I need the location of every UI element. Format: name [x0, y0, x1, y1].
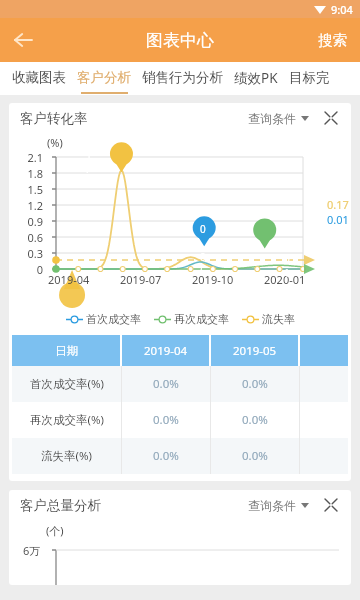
staticText: 0.0% — [242, 412, 268, 428]
staticText: 0 — [9, 262, 43, 277]
staticText: 流失率(%) — [41, 448, 92, 464]
staticText: 2019-07 — [120, 272, 162, 287]
staticText: 查询条件 — [248, 498, 296, 513]
staticText: 0.0% — [242, 376, 268, 392]
staticText: 首次成交率 — [86, 312, 141, 326]
staticText: 0.0% — [242, 448, 268, 464]
staticText: 客户分析 — [77, 69, 131, 86]
staticText: 0.0% — [153, 376, 179, 392]
button[interactable]: 流失率 — [242, 312, 295, 326]
staticText: 再次成交率(%) — [30, 412, 104, 428]
staticText: 9:04 — [331, 2, 353, 17]
staticText: 绩效PK — [234, 69, 278, 87]
button[interactable]: Fullscreen — [320, 494, 342, 516]
button[interactable]: 客户分析 — [77, 62, 131, 95]
staticText: 0.01 — [327, 212, 349, 227]
staticText: 搜索 — [318, 31, 347, 49]
staticText: 1.2 — [9, 198, 43, 213]
button[interactable]: 查询条件 — [246, 493, 311, 518]
staticText: 0.0% — [153, 448, 179, 464]
staticText: 0.9 — [9, 214, 43, 229]
staticText: 2019-04 — [48, 272, 90, 287]
button[interactable]: Back — [0, 18, 46, 62]
staticText: 1.5 — [9, 182, 43, 197]
staticText: 收藏图表 — [12, 69, 66, 86]
staticText: 目标完 — [289, 69, 330, 86]
staticText: 2020-01 — [264, 272, 306, 287]
staticText: 1.8 — [9, 166, 43, 181]
staticText: 0.17 — [327, 197, 349, 212]
staticText: (个) — [46, 523, 64, 538]
staticText: 再次成交率 — [174, 312, 229, 326]
staticText: 客户转化率 — [20, 110, 88, 127]
button[interactable]: 绩效PK — [234, 62, 278, 95]
staticText: 0.6 — [9, 230, 43, 245]
staticText: 6万 — [23, 543, 41, 558]
staticText: 2.1 — [9, 150, 43, 165]
staticText: 首次成交率(%) — [30, 376, 104, 392]
staticText: 客户总量分析 — [20, 497, 101, 514]
staticText: 图表中心 — [146, 30, 214, 51]
staticText: 日期 — [55, 344, 78, 358]
button[interactable]: 目标完 — [289, 62, 330, 95]
button[interactable]: 搜索 — [305, 18, 360, 62]
staticText: 销售行为分析 — [142, 69, 223, 86]
button[interactable]: 查询条件 — [246, 106, 311, 131]
button[interactable]: 2019-04 — [122, 335, 209, 366]
button[interactable]: Fullscreen — [320, 107, 342, 129]
button[interactable]: 销售行为分析 — [142, 62, 223, 95]
staticText: (%) — [47, 135, 63, 150]
button[interactable]: 收藏图表 — [12, 62, 66, 95]
staticText: 0.3 — [9, 246, 43, 261]
button[interactable]: 2019-05 — [211, 335, 298, 366]
button[interactable]: 日期 — [12, 335, 120, 366]
staticText: 0.0% — [153, 412, 179, 428]
button[interactable]: 再次成交率 — [154, 312, 229, 326]
staticText: 2019-10 — [192, 272, 234, 287]
staticText: 流失率 — [262, 312, 295, 326]
button[interactable]: 首次成交率 — [66, 312, 141, 326]
staticText: 2019-04 — [144, 343, 188, 359]
staticText: 2019-05 — [233, 343, 277, 359]
staticText: 查询条件 — [248, 111, 296, 126]
